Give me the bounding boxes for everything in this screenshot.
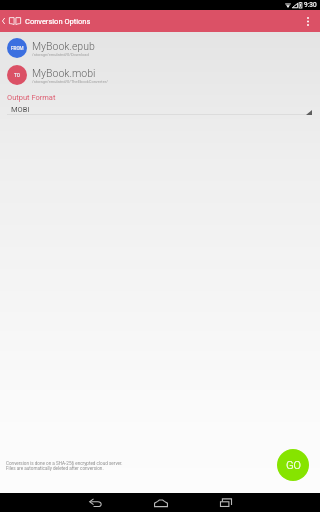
staticText: TO <box>14 73 20 78</box>
staticText: Conversion is done on a SHA-256 encrypte… <box>6 461 123 466</box>
staticText: Conversion Options <box>25 17 91 26</box>
button[interactable]: FROM <box>0 35 320 61</box>
button[interactable]: Back <box>63 493 128 512</box>
button[interactable]: Home <box>128 493 193 512</box>
staticText: MOBI <box>11 105 30 114</box>
button[interactable]: MOBI <box>0 103 320 119</box>
staticText: Output Format <box>7 93 56 102</box>
button[interactable]: Recents <box>193 493 258 512</box>
staticText: MyBook.epub <box>32 40 95 52</box>
staticText: 9:30 <box>304 1 317 9</box>
staticText: MyBook.mobi <box>32 67 96 79</box>
staticText: Files are automatically deleted after co… <box>6 466 104 471</box>
staticText: /storage/emulated/0/Download <box>32 52 89 57</box>
button[interactable]: More options <box>300 10 316 32</box>
staticText: /storage/emulated/0/TheEbookConverter/ <box>32 79 108 84</box>
staticText: GO <box>286 459 301 472</box>
button[interactable]: GO <box>277 449 309 481</box>
staticText: FROM <box>11 46 24 51</box>
button[interactable]: TO <box>0 62 320 88</box>
button[interactable]: Back <box>0 10 7 32</box>
